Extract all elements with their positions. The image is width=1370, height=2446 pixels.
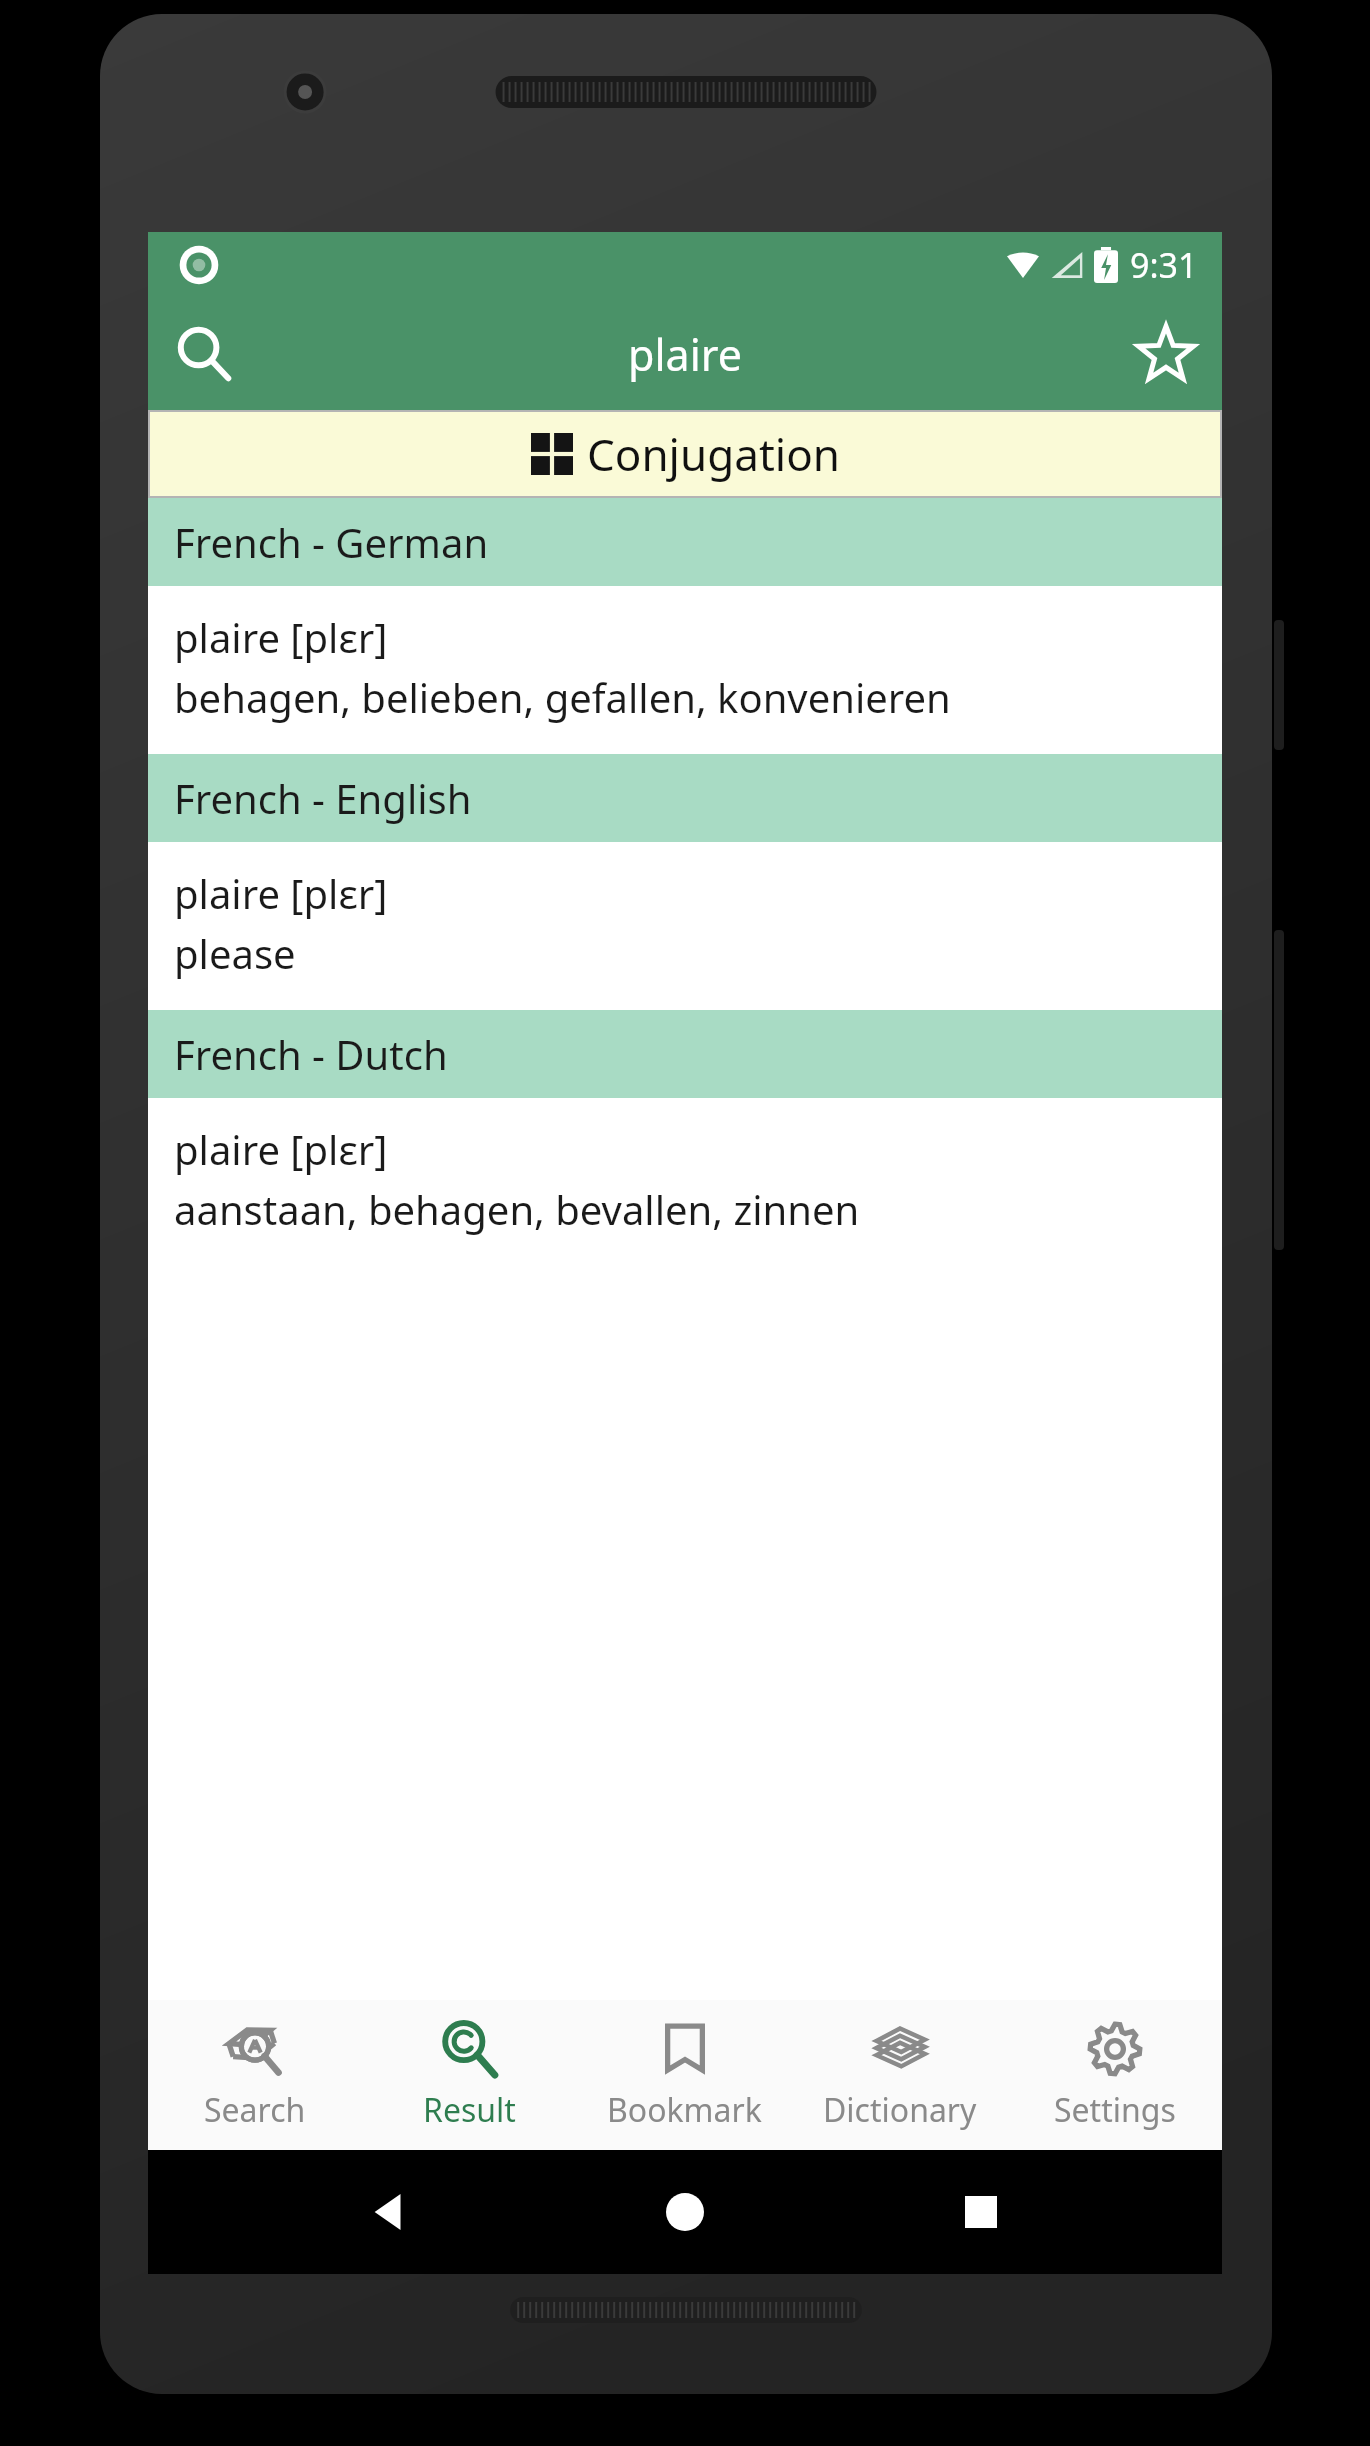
staticText: plaire [plɛr] xyxy=(174,1122,388,1176)
staticText: plaire [plɛr] xyxy=(174,866,388,920)
button[interactable]: Settings xyxy=(1007,2000,1222,2150)
staticText: Result xyxy=(423,2088,516,2132)
button[interactable]: plaire [plɛr] xyxy=(148,1098,1222,1266)
button[interactable]: Dictionary xyxy=(792,2000,1007,2150)
button[interactable]: Recent apps xyxy=(926,2157,1036,2267)
staticText: Bookmark xyxy=(607,2088,762,2132)
staticText: plaire [plɛr] xyxy=(174,610,388,664)
button[interactable]: Add to favourites xyxy=(1110,298,1222,410)
staticText: Search xyxy=(204,2088,306,2132)
button[interactable]: Conjugation xyxy=(150,412,1220,496)
staticText: French - English xyxy=(174,771,472,825)
button[interactable]: Result xyxy=(362,2000,577,2150)
button[interactable]: Search xyxy=(148,2000,362,2150)
button[interactable]: Bookmark xyxy=(577,2000,792,2150)
button[interactable]: Back xyxy=(334,2157,444,2267)
button[interactable]: plaire [plɛr] xyxy=(148,842,1222,1010)
button[interactable]: French - German xyxy=(148,498,1222,586)
staticText: Conjugation xyxy=(587,424,840,484)
staticText: Dictionary xyxy=(823,2088,977,2132)
staticText: plaire xyxy=(628,325,742,384)
staticText: Settings xyxy=(1054,2088,1176,2132)
staticText: aanstaan, behagen, bevallen, zinnen xyxy=(174,1182,860,1236)
button[interactable]: Search xyxy=(148,298,260,410)
staticText: behagen, belieben, gefallen, konvenieren xyxy=(174,670,951,724)
staticText: French - German xyxy=(174,515,489,569)
staticText: 9:31 xyxy=(1130,242,1198,288)
staticText: please xyxy=(174,926,296,980)
staticText: French - Dutch xyxy=(174,1027,448,1081)
button[interactable]: plaire [plɛr] xyxy=(148,586,1222,754)
button[interactable]: Home xyxy=(630,2157,740,2267)
button[interactable]: French - Dutch xyxy=(148,1010,1222,1098)
button[interactable]: French - English xyxy=(148,754,1222,842)
